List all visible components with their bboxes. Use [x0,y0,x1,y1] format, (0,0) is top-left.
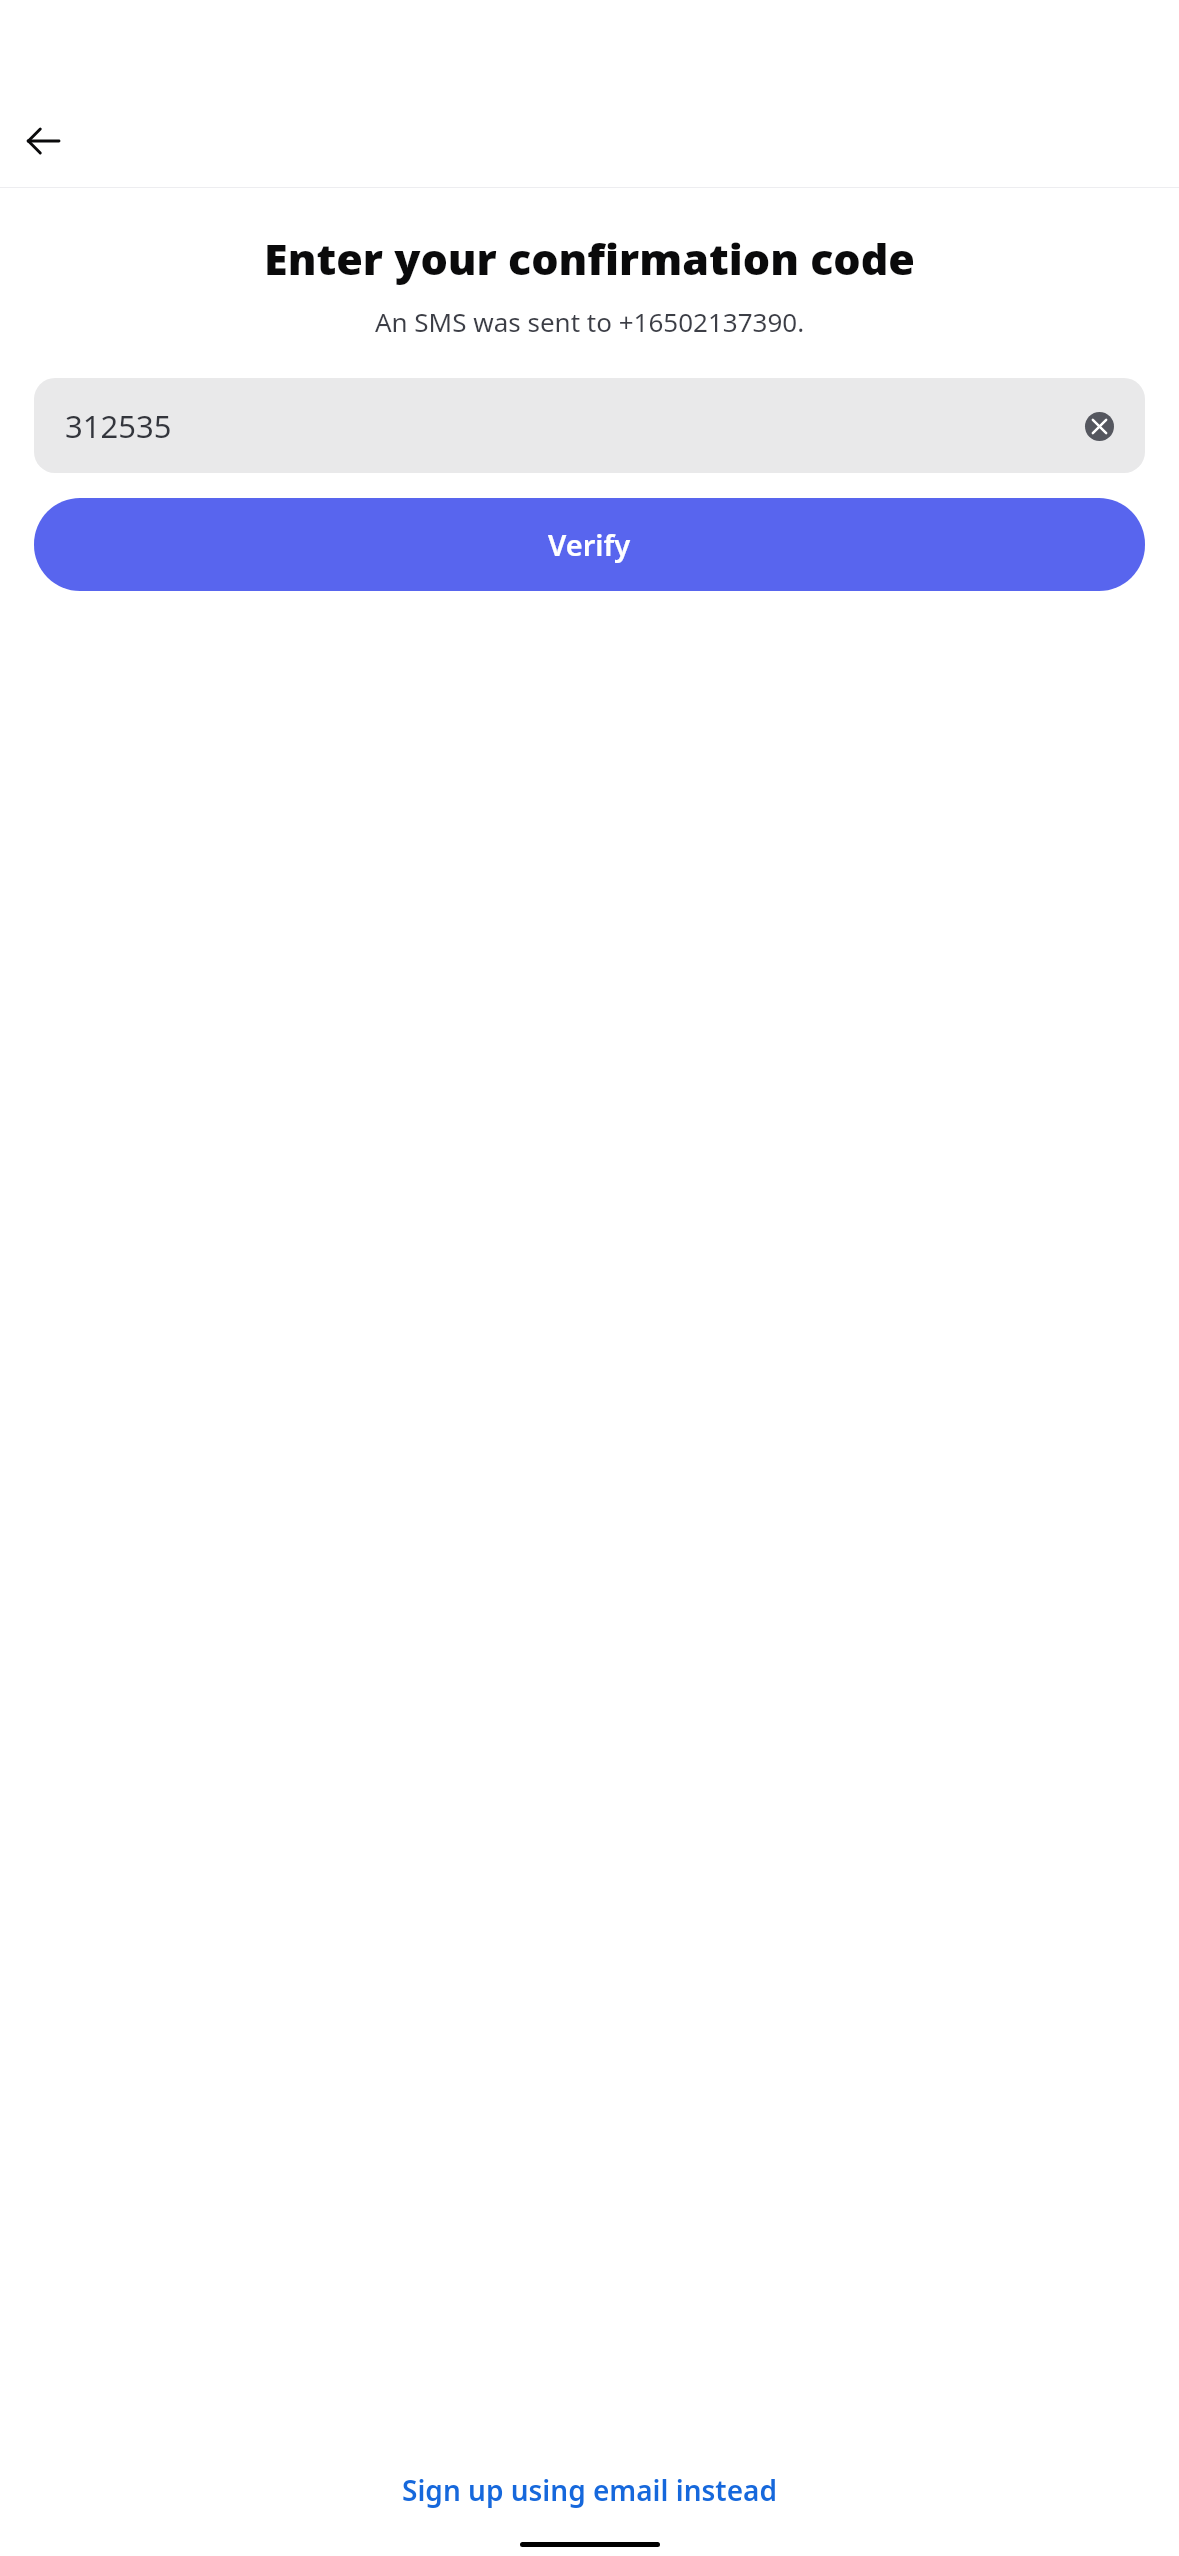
button[interactable]: Sign up using email instead [386,2463,793,2517]
button[interactable]: Verify [34,498,1145,591]
button[interactable]: Back [10,108,76,174]
staticText: Sign up using email instead [402,2471,777,2509]
button[interactable]: 312535 [34,378,1145,473]
staticText: Enter your confirmation code [20,229,1159,288]
staticText: 312535 [65,405,1077,447]
staticText: Verify [548,525,631,564]
staticText: An SMS was sent to +16502137390. [20,304,1159,339]
button[interactable]: Clear code [1077,404,1121,448]
